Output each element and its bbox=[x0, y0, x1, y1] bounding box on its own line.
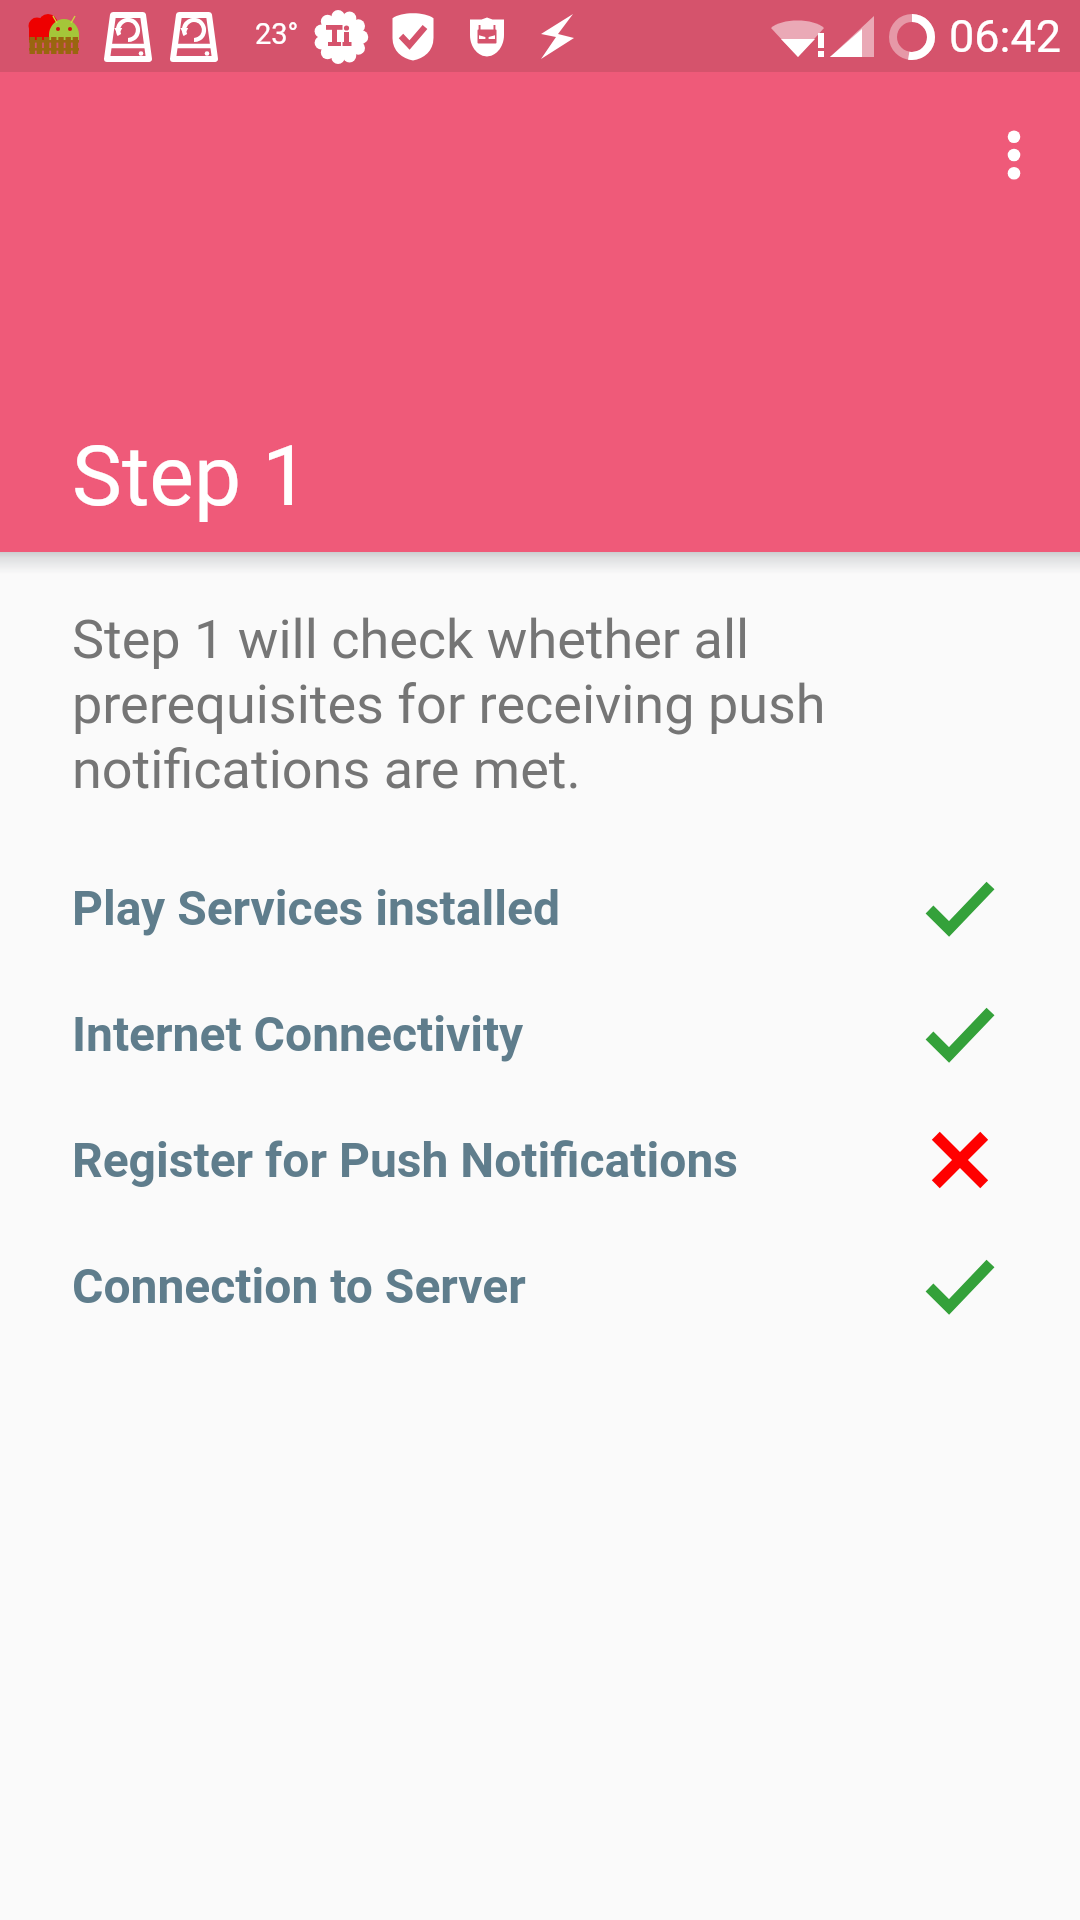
staticText: Step 1 bbox=[72, 427, 310, 525]
other: Failed bbox=[924, 1124, 996, 1196]
other: Passed bbox=[924, 1250, 996, 1322]
button[interactable]: Play Services installed bbox=[0, 845, 1080, 971]
button[interactable]: Connection to Server bbox=[0, 1223, 1080, 1349]
staticText: Internet Connectivity bbox=[72, 1006, 524, 1062]
other: Passed bbox=[924, 872, 996, 944]
staticText: 23° bbox=[255, 17, 299, 51]
staticText: 06:42 bbox=[949, 10, 1062, 63]
button[interactable]: Internet Connectivity bbox=[0, 971, 1080, 1097]
button[interactable]: More options bbox=[966, 107, 1062, 203]
staticText: Register for Push Notifications bbox=[72, 1132, 738, 1188]
other: Passed bbox=[924, 998, 996, 1070]
staticText: Play Services installed bbox=[72, 880, 560, 936]
staticText: Step 1 will check whether all prerequisi… bbox=[72, 608, 912, 801]
button[interactable]: Register for Push Notifications bbox=[0, 1097, 1080, 1223]
staticText: Connection to Server bbox=[72, 1258, 526, 1314]
